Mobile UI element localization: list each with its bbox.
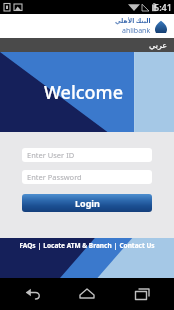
staticText: Enter User ID bbox=[27, 150, 75, 160]
button[interactable]: Enter Password bbox=[22, 170, 152, 184]
button[interactable]: FAQs bbox=[19, 241, 36, 250]
button[interactable]: Contact Us bbox=[119, 241, 155, 250]
button[interactable]: Recent apps bbox=[120, 278, 164, 310]
staticText: 5:41 bbox=[154, 1, 172, 13]
staticText: Login bbox=[75, 197, 100, 209]
button[interactable]: Enter User ID bbox=[22, 148, 152, 162]
button[interactable]: Home bbox=[65, 278, 109, 310]
button[interactable]: عربي bbox=[143, 38, 174, 52]
staticText: FAQs bbox=[19, 241, 36, 250]
staticText: Enter Password bbox=[27, 172, 82, 182]
staticText: عربي bbox=[149, 41, 168, 50]
staticText: البنك الأهلي bbox=[115, 17, 151, 25]
staticText: | bbox=[36, 241, 43, 250]
staticText: | bbox=[112, 241, 119, 250]
button[interactable]: Login bbox=[22, 194, 152, 212]
staticText: Contact Us bbox=[119, 241, 155, 250]
staticText: Locate ATM & Branch bbox=[43, 241, 112, 250]
button[interactable]: Back bbox=[11, 278, 55, 310]
button[interactable]: Locate ATM & Branch bbox=[43, 241, 112, 250]
button[interactable]: ahlibank logo bbox=[115, 17, 168, 36]
staticText: Welcome bbox=[44, 80, 123, 105]
staticText: ahlibank bbox=[122, 26, 151, 36]
